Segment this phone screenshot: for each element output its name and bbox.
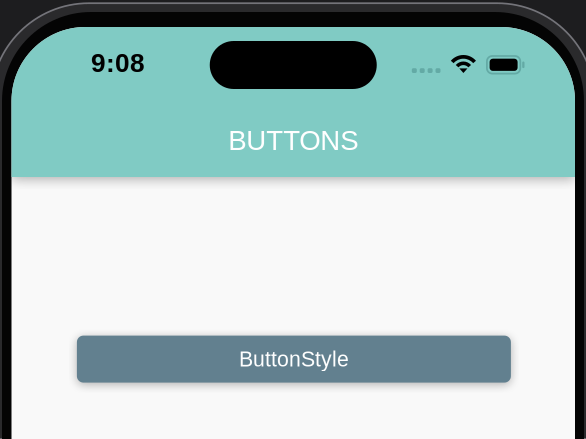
staticText: 9:08 (91, 48, 145, 78)
staticText: ButtonStyle (239, 347, 349, 371)
button[interactable]: ButtonStyle (77, 336, 511, 383)
staticText: BUTTONS (228, 125, 358, 156)
